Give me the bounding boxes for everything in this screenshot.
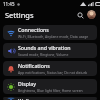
staticText: Sounds and vibration — [18, 44, 71, 51]
staticText: App notifications, Status bar, Do not di… — [18, 70, 88, 75]
staticText: 11:45 — [3, 1, 15, 7]
staticText: Notifications — [18, 62, 50, 69]
button[interactable]: Sounds and vibration — [3, 43, 97, 58]
staticText: Wi-Fi, Bluetooth, Airplane mode, Data us… — [18, 34, 89, 39]
button[interactable]: Wallpaper — [3, 97, 97, 100]
staticText: Connections — [18, 26, 49, 33]
staticText: Settings — [5, 10, 34, 20]
button[interactable]: Search settings — [75, 10, 85, 20]
staticText: Sound mode, Ringtone, Volume — [18, 52, 69, 57]
staticText: Brightness, Blue light filter, Home scre… — [18, 88, 83, 93]
button[interactable]: Notifications — [3, 61, 97, 76]
button[interactable]: Account profile — [87, 10, 96, 19]
button[interactable]: Connections — [3, 25, 97, 40]
staticText: Display — [18, 80, 37, 87]
staticText: Wallpaper — [18, 97, 44, 100]
button[interactable]: Display — [3, 79, 97, 94]
